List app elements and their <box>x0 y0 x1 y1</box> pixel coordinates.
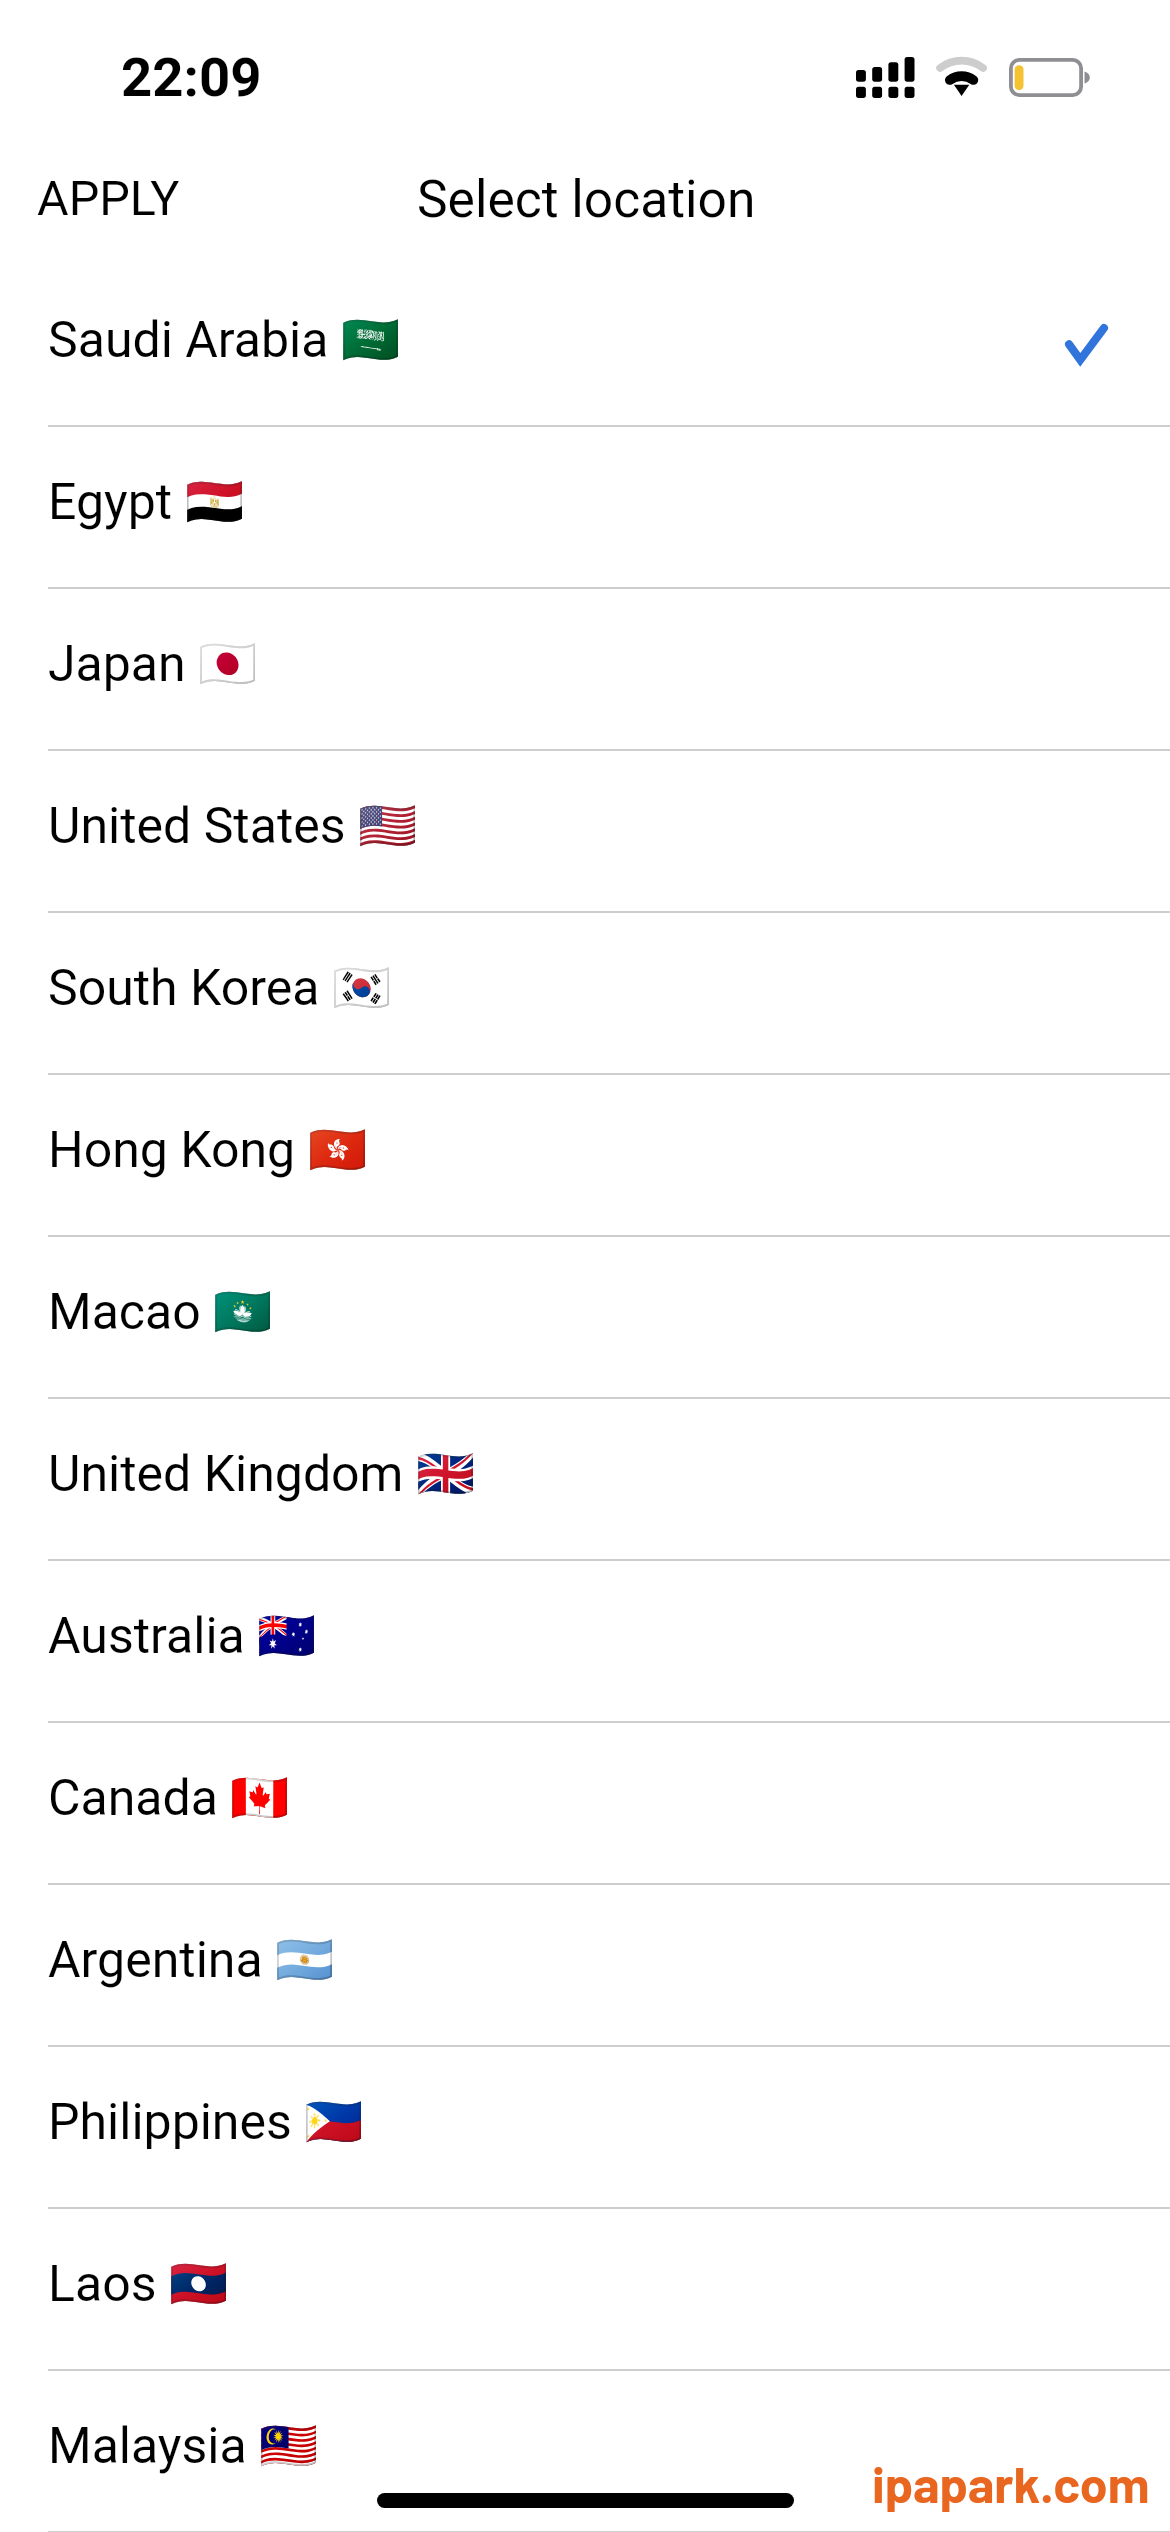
staticText: Philippines <box>48 2093 292 2152</box>
staticText: Select location <box>417 169 756 229</box>
staticText: 🇲🇾 <box>259 2418 319 2474</box>
button[interactable]: Egypt <box>0 427 1170 587</box>
button[interactable]: South Korea <box>0 913 1170 1073</box>
staticText: United Kingdom <box>48 1445 404 1504</box>
button[interactable]: Argentina <box>0 1885 1170 2045</box>
other: Cellular signal <box>856 56 914 98</box>
staticText: 🇦🇷 <box>275 1932 335 1988</box>
other: Selected <box>1065 324 1108 366</box>
staticText: ipapark.com <box>872 2453 1150 2513</box>
button[interactable]: United Kingdom <box>0 1399 1170 1559</box>
staticText: Canada <box>48 1769 218 1828</box>
staticText: 🇨🇦 <box>230 1770 290 1826</box>
staticText: 🇰🇷 <box>332 960 392 1016</box>
staticText: Malaysia <box>48 2417 247 2476</box>
staticText: Laos <box>48 2255 157 2314</box>
staticText: Egypt <box>48 473 173 532</box>
button[interactable]: Malaysia <box>0 2371 1170 2531</box>
button[interactable]: APPLY <box>10 152 207 245</box>
staticText: Australia <box>48 1607 245 1666</box>
staticText: 🇸🇦 <box>341 312 401 368</box>
staticText: 🇺🇸 <box>358 798 418 854</box>
staticText: South Korea <box>48 959 320 1018</box>
staticText: Saudi Arabia <box>48 311 329 370</box>
other: Battery low <box>1009 58 1093 98</box>
other: Wi-Fi <box>934 55 990 97</box>
staticText: 🇱🇦 <box>169 2256 229 2312</box>
staticText: 🇭🇰 <box>308 1122 368 1178</box>
staticText: 🇲🇴 <box>213 1284 273 1340</box>
staticText: 🇯🇵 <box>198 636 258 692</box>
staticText: APPLY <box>37 170 180 227</box>
button[interactable]: Canada <box>0 1723 1170 1883</box>
button[interactable]: Laos <box>0 2209 1170 2369</box>
button[interactable]: Saudi Arabia <box>0 265 1170 425</box>
staticText: Hong Kong <box>48 1121 296 1180</box>
staticText: 22:09 <box>121 45 262 109</box>
staticText: 🇵🇭 <box>304 2094 364 2150</box>
staticText: Macao <box>48 1283 201 1342</box>
staticText: 🇦🇺 <box>257 1608 317 1664</box>
button[interactable]: Hong Kong <box>0 1075 1170 1235</box>
button[interactable]: Australia <box>0 1561 1170 1721</box>
button[interactable]: Japan <box>0 589 1170 749</box>
staticText: Japan <box>48 635 186 694</box>
button[interactable]: Philippines <box>0 2047 1170 2207</box>
staticText: 🇪🇬 <box>185 474 245 530</box>
staticText: 🇬🇧 <box>416 1446 476 1502</box>
button[interactable]: United States <box>0 751 1170 911</box>
staticText: Argentina <box>48 1931 263 1990</box>
button[interactable]: Macao <box>0 1237 1170 1397</box>
staticText: United States <box>48 797 346 856</box>
